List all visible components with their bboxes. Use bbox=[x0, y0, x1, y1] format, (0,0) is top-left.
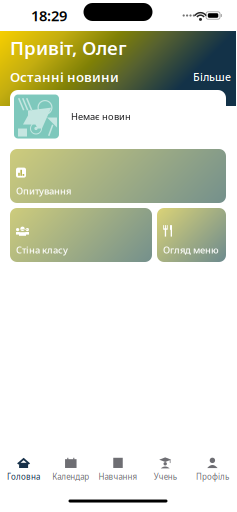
button[interactable]: Календар bbox=[47, 451, 94, 490]
staticText: 18:29 bbox=[31, 6, 67, 25]
staticText: Головна bbox=[7, 471, 40, 482]
staticText: Більше bbox=[193, 70, 231, 84]
button[interactable]: Огляд меню bbox=[157, 208, 226, 262]
button[interactable]: Навчання bbox=[94, 451, 142, 490]
button[interactable]: Більше bbox=[193, 70, 231, 84]
button[interactable]: Немає новин bbox=[10, 90, 226, 143]
staticText: Стіна класу bbox=[16, 244, 68, 256]
button[interactable]: Стіна класу bbox=[10, 208, 152, 262]
staticText: Учень bbox=[154, 471, 177, 482]
staticText: Профіль bbox=[196, 471, 229, 482]
button[interactable]: Головна bbox=[0, 451, 47, 490]
staticText: Останні новини bbox=[10, 68, 119, 86]
staticText: Привіт, Олег bbox=[10, 35, 127, 60]
button[interactable]: Профіль bbox=[189, 451, 236, 490]
button[interactable]: Учень bbox=[142, 451, 189, 490]
staticText: Календар bbox=[52, 471, 89, 482]
button[interactable]: Опитування bbox=[10, 149, 226, 203]
staticText: Огляд меню bbox=[163, 244, 219, 256]
staticText: Немає новин bbox=[71, 110, 131, 123]
staticText: Опитування bbox=[16, 185, 71, 197]
staticText: Навчання bbox=[98, 471, 137, 482]
